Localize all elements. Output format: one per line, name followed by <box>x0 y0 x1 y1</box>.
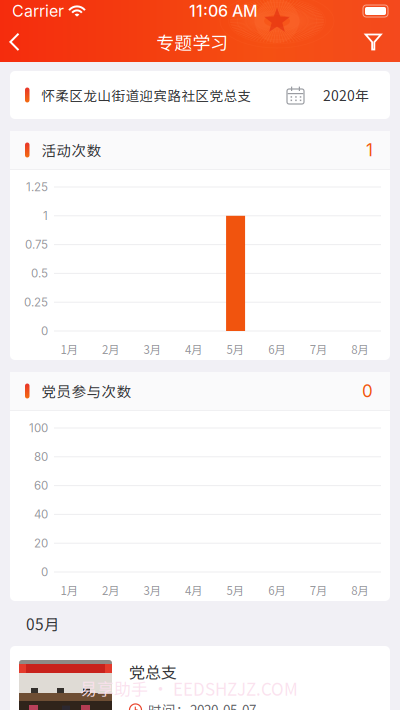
staticText: 5月 <box>227 582 245 598</box>
staticText: 活动次数 <box>41 139 101 160</box>
staticText: 专题学习 <box>156 29 228 55</box>
staticText: 8月 <box>351 582 369 598</box>
staticText: 易享助手 · EEDSHZJZ.COM <box>80 676 298 701</box>
staticText: 7月 <box>310 582 328 598</box>
staticText: 3月 <box>143 341 161 357</box>
staticText: 7月 <box>310 341 328 357</box>
staticText: 2月 <box>102 582 120 598</box>
button[interactable]: 党总支 <box>0 646 400 710</box>
staticText: 4月 <box>185 582 203 598</box>
staticText: 8月 <box>351 341 369 357</box>
staticText: Carrier <box>12 1 64 21</box>
staticText: 20 <box>34 536 48 550</box>
staticText: 4月 <box>185 341 203 357</box>
staticText: 3月 <box>143 582 161 598</box>
staticText: 党员参与次数 <box>41 380 131 401</box>
staticText: 6月 <box>268 582 286 598</box>
staticText: 2月 <box>102 341 120 357</box>
staticText: 1 <box>366 140 373 160</box>
staticText: 0.5 <box>31 266 48 280</box>
button[interactable]: Filter <box>350 22 400 62</box>
staticText: 0.25 <box>24 295 48 309</box>
staticText: 1 <box>43 209 48 223</box>
staticText: 1月 <box>60 341 78 357</box>
staticText: 1.25 <box>26 180 48 194</box>
staticText: 80 <box>34 450 48 464</box>
staticText: 0.75 <box>25 238 48 251</box>
staticText: 6月 <box>268 341 286 357</box>
staticText: 5月 <box>227 341 245 357</box>
staticText: 60 <box>34 479 48 492</box>
staticText: 2020年 <box>323 85 369 105</box>
button[interactable]: 2020年 <box>287 74 369 116</box>
button[interactable]: Back <box>0 22 34 61</box>
staticText: 05月 <box>26 612 60 635</box>
staticText: 0 <box>41 565 48 579</box>
staticText: 1月 <box>60 582 78 598</box>
staticText: 0 <box>41 324 48 338</box>
staticText: 40 <box>34 507 48 521</box>
staticText: 11:06 AM <box>189 1 258 21</box>
staticText: 时间：2020-05-07 <box>148 700 256 710</box>
staticText: 怀柔区龙山街道迎宾路社区党总支 <box>41 85 251 105</box>
staticText: 0 <box>362 381 373 401</box>
staticText: 100 <box>29 421 48 435</box>
staticText: 党总支 <box>129 660 177 683</box>
